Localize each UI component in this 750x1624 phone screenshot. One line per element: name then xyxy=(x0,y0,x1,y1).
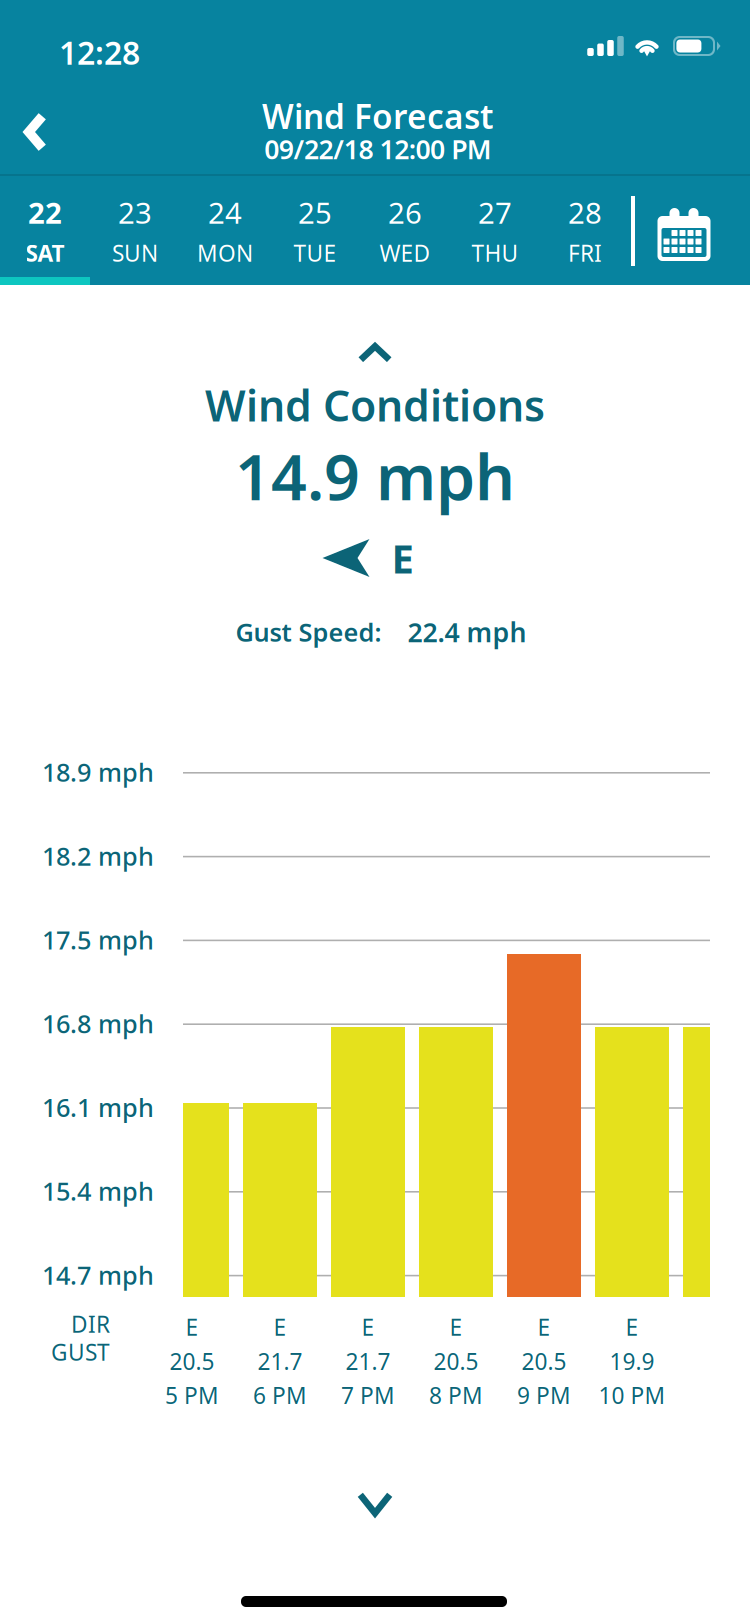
staticText: 20.5 xyxy=(433,1346,478,1376)
button[interactable]: 23 xyxy=(90,176,180,285)
button[interactable]: Previous hour xyxy=(310,326,440,380)
staticText: E xyxy=(625,1312,638,1342)
staticText: Wind Conditions xyxy=(205,377,545,433)
staticText: DIR xyxy=(71,1309,110,1339)
staticText: FRI xyxy=(568,238,602,268)
staticText: 7 PM xyxy=(341,1380,395,1410)
staticText: 25 xyxy=(298,193,332,232)
staticText: 9 PM xyxy=(517,1380,571,1410)
staticText: MON xyxy=(197,238,253,268)
staticText: THU xyxy=(471,238,518,268)
staticText: 20.5 xyxy=(169,1346,214,1376)
button[interactable]: Next hour xyxy=(310,1474,440,1534)
staticText: E xyxy=(391,531,413,584)
staticText: E xyxy=(185,1312,198,1342)
staticText: 22 xyxy=(28,193,62,232)
staticText: 22.4 mph xyxy=(407,614,526,650)
staticText: 14.7 mph xyxy=(42,1258,154,1292)
button[interactable]: 26 xyxy=(360,176,450,285)
button[interactable]: 24 xyxy=(180,176,270,285)
staticText: 28 xyxy=(568,193,602,232)
staticText: TUE xyxy=(293,238,336,268)
staticText: 09/22/18 12:00 PM xyxy=(264,131,492,167)
staticText: SUN xyxy=(112,238,158,268)
staticText: E xyxy=(449,1312,462,1342)
staticText: 14.9 mph xyxy=(235,434,515,518)
staticText: 21.7 xyxy=(345,1346,390,1376)
staticText: SAT xyxy=(25,238,64,268)
staticText: 23 xyxy=(118,193,152,232)
staticText: GUST xyxy=(51,1337,110,1367)
staticText: 16.1 mph xyxy=(42,1090,154,1124)
staticText: 15.4 mph xyxy=(42,1174,154,1208)
staticText: 26 xyxy=(388,193,422,232)
staticText: 20.5 xyxy=(521,1346,566,1376)
staticText: 19.9 xyxy=(609,1346,654,1376)
button[interactable]: 27 xyxy=(450,176,540,285)
staticText: 21.7 xyxy=(257,1346,302,1376)
staticText: 18.9 mph xyxy=(42,755,154,789)
staticText: 6 PM xyxy=(253,1380,307,1410)
button[interactable]: 22 xyxy=(0,176,90,285)
staticText: 8 PM xyxy=(429,1380,483,1410)
staticText: 24 xyxy=(208,193,242,232)
staticText: 27 xyxy=(478,193,512,232)
staticText: WED xyxy=(379,238,430,268)
staticText: E xyxy=(273,1312,286,1342)
button[interactable]: Open calendar xyxy=(649,176,719,285)
staticText: 18.2 mph xyxy=(42,839,154,873)
staticText: 16.8 mph xyxy=(42,1007,154,1040)
staticText: Wind Forecast xyxy=(262,94,494,138)
staticText: Gust Speed: xyxy=(235,615,381,649)
staticText: E xyxy=(537,1312,550,1342)
staticText: 5 PM xyxy=(165,1380,219,1410)
button[interactable]: 25 xyxy=(270,176,360,285)
staticText: E xyxy=(361,1312,374,1342)
staticText: 10 PM xyxy=(598,1380,665,1410)
staticText: 12:28 xyxy=(59,31,140,73)
button[interactable]: Back xyxy=(0,88,71,176)
staticText: 17.5 mph xyxy=(42,923,154,956)
button[interactable]: 28 xyxy=(540,176,630,285)
